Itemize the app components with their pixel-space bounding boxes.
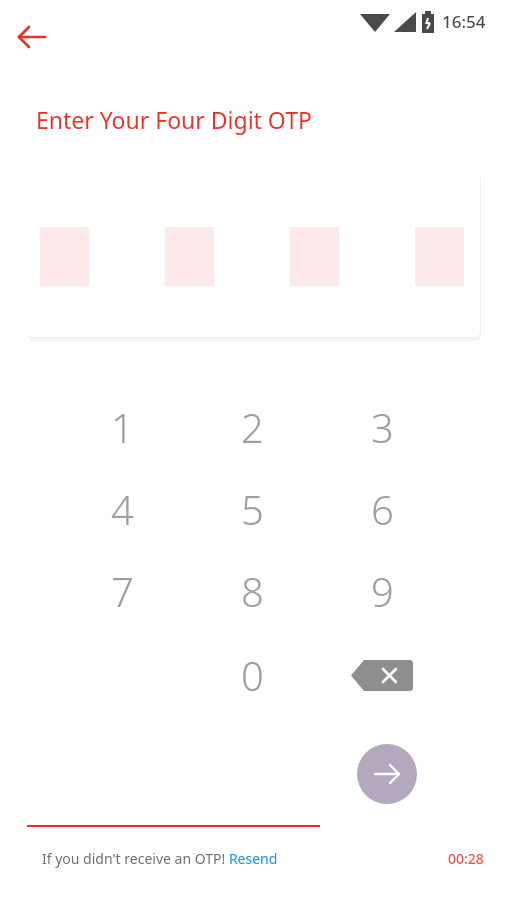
staticText: 0: [241, 648, 264, 702]
staticText: 9: [371, 564, 394, 618]
staticText: 8: [241, 564, 264, 618]
button[interactable]: Back: [8, 18, 56, 56]
staticText: If you didn't receive an OTP! Resend: [42, 849, 278, 868]
staticText: 16:54: [442, 10, 486, 33]
button[interactable]: If you didn't receive an OTP! Resend: [42, 849, 278, 868]
button[interactable]: Backspace: [344, 643, 420, 707]
staticText: Enter Your Four Digit OTP: [36, 104, 312, 135]
staticText: 6: [371, 482, 394, 536]
staticText: 1: [111, 400, 134, 454]
button[interactable]: 6: [344, 477, 420, 541]
staticText: 3: [371, 400, 394, 454]
staticText: 7: [111, 564, 134, 618]
button[interactable]: 7: [84, 559, 160, 623]
staticText: 5: [241, 482, 264, 536]
button[interactable]: 2: [214, 395, 290, 459]
staticText: 4: [111, 482, 134, 536]
button[interactable]: 0: [214, 643, 290, 707]
button[interactable]: 4: [84, 477, 160, 541]
button[interactable]: 9: [344, 559, 420, 623]
button[interactable]: Submit: [357, 744, 417, 804]
button[interactable]: 3: [344, 395, 420, 459]
button[interactable]: 1: [84, 395, 160, 459]
staticText: 2: [241, 400, 264, 454]
button[interactable]: 8: [214, 559, 290, 623]
staticText: 00:28: [448, 849, 484, 868]
button[interactable]: 5: [214, 477, 290, 541]
